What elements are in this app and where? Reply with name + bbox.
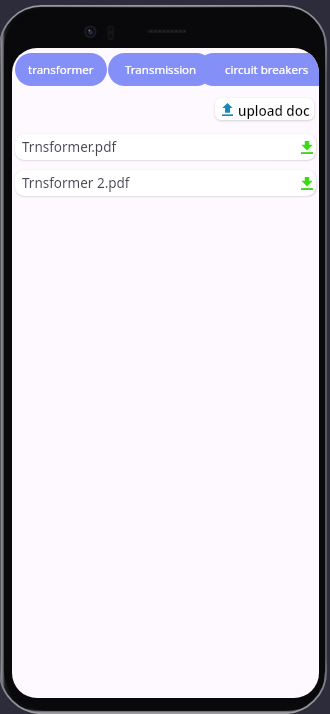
staticText: transformer [28, 62, 94, 78]
button[interactable]: upload doc [215, 98, 314, 120]
button[interactable]: Transmission [108, 53, 213, 86]
button[interactable]: circuit breakers [197, 53, 319, 86]
button[interactable]: Trnsformer 2.pdf [15, 170, 316, 196]
button[interactable]: transformer [15, 53, 107, 86]
button[interactable]: Trnsformer.pdf [15, 134, 316, 160]
staticText: circuit breakers [225, 62, 309, 78]
button[interactable]: Download [301, 177, 313, 190]
staticText: Trnsformer 2.pdf [22, 174, 130, 192]
button[interactable]: Download [301, 141, 313, 154]
staticText: Trnsformer.pdf [22, 138, 117, 156]
staticText: Transmission [125, 62, 197, 78]
staticText: upload doc [238, 102, 310, 120]
